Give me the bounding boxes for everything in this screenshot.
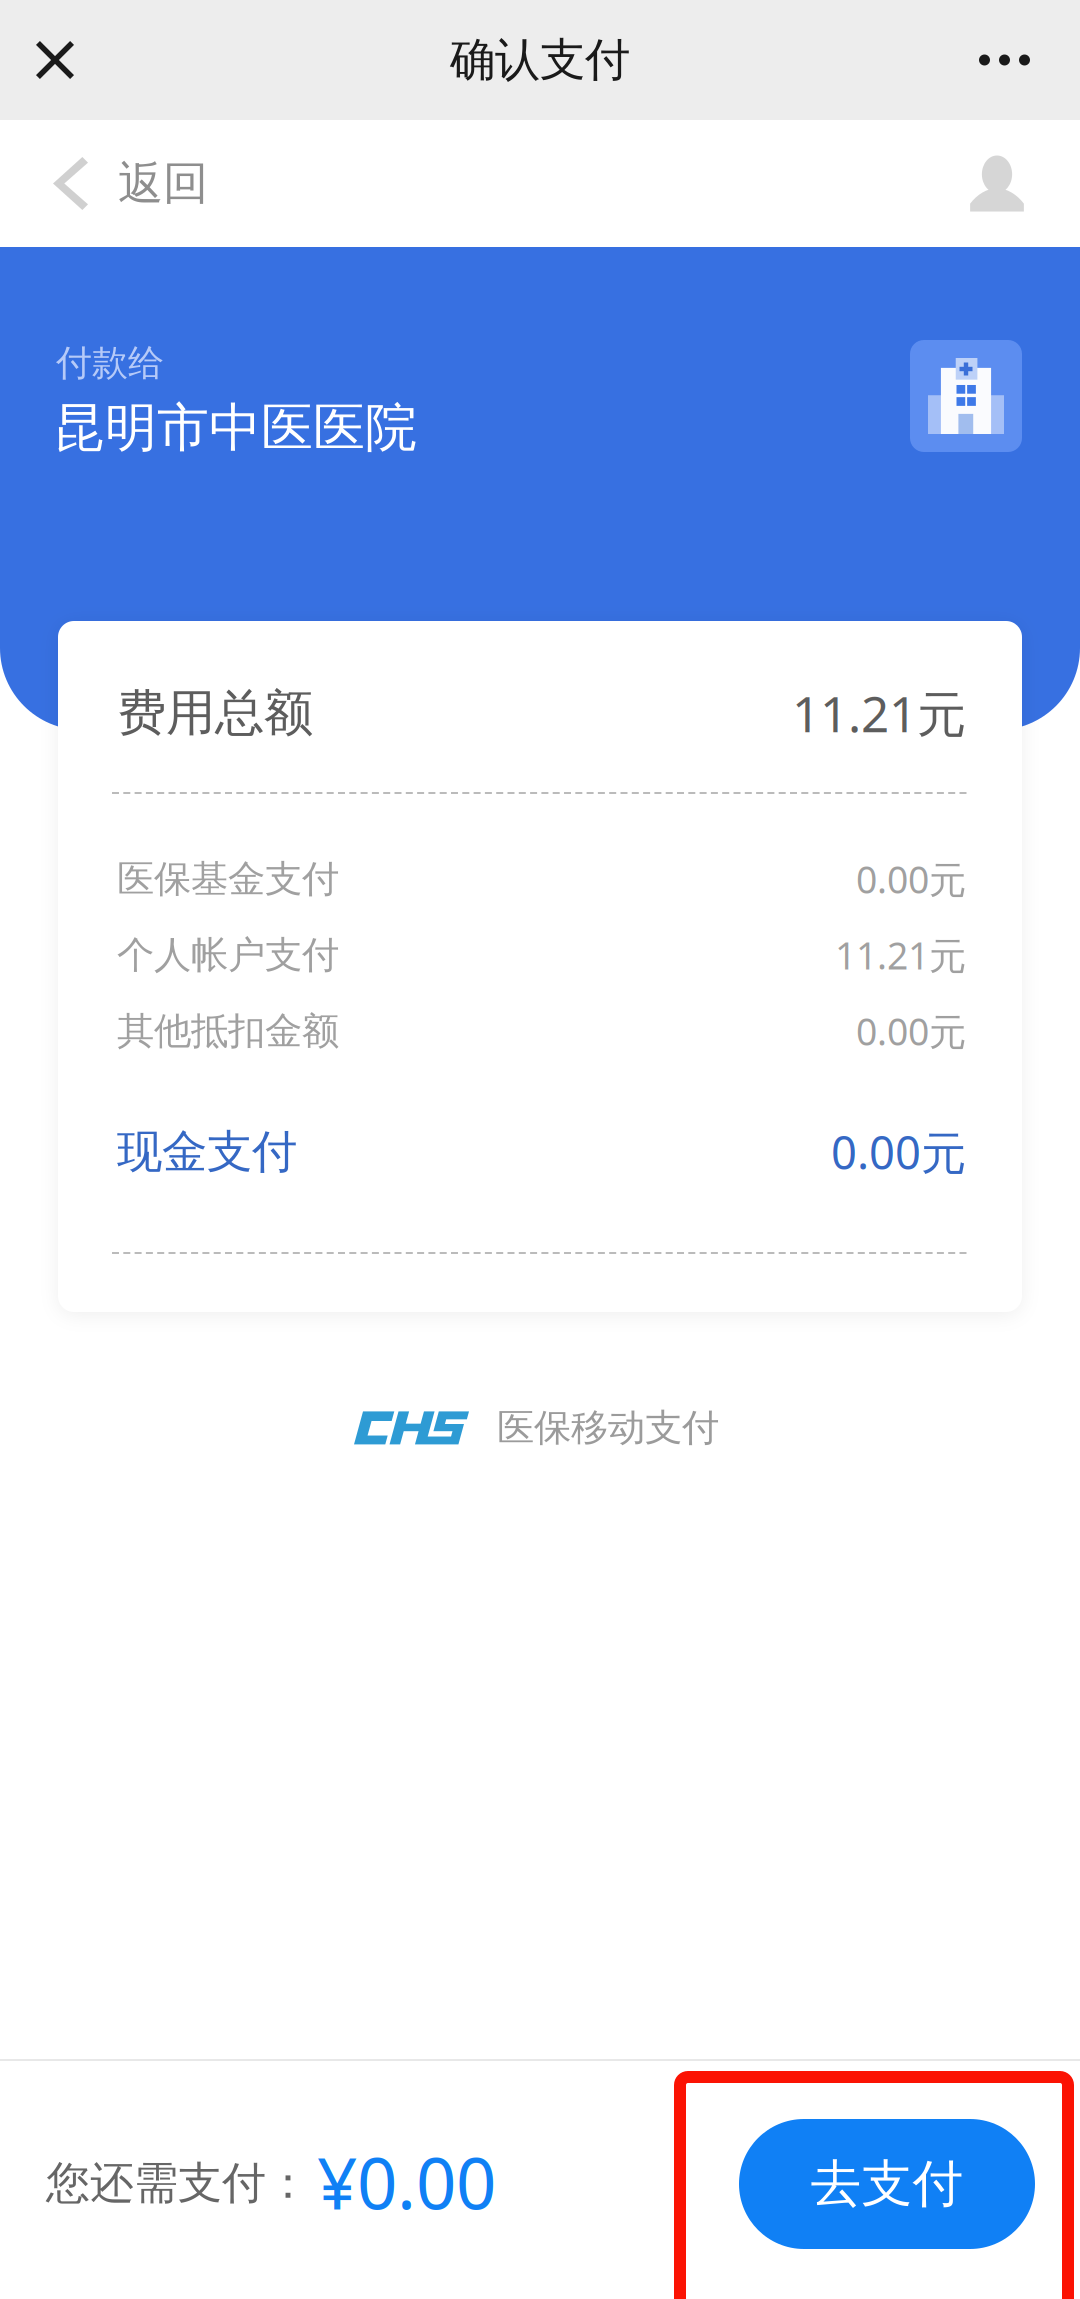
staticText: 0.00元 — [831, 1122, 966, 1182]
button[interactable]: 去支付 — [739, 2119, 1035, 2249]
staticText: 昆明市中医医院 — [53, 396, 417, 460]
staticText: 医保移动支付 — [497, 1405, 719, 1451]
staticText: 去支付 — [810, 2153, 963, 2215]
staticText: 医保基金支付 — [117, 856, 339, 902]
staticText: 个人帐户支付 — [117, 932, 339, 978]
button[interactable]: 关闭 — [0, 0, 118, 120]
staticText: ¥0.00 — [317, 2135, 496, 2229]
button[interactable]: 用户 — [939, 120, 1080, 247]
staticText: 11.21元 — [792, 680, 966, 746]
button[interactable]: 返回 — [0, 120, 238, 247]
staticText: 0.00元 — [856, 1006, 966, 1056]
staticText: 0.00元 — [856, 854, 966, 904]
staticText: 现金支付 — [117, 1124, 297, 1180]
staticText: 您还需支付： — [46, 2156, 310, 2210]
staticText: 付款给 — [56, 341, 164, 385]
staticText: 确认支付 — [450, 32, 630, 88]
staticText: 11.21元 — [835, 930, 966, 980]
staticText: 其他抵扣金额 — [117, 1008, 339, 1054]
button[interactable]: 更多 — [939, 0, 1080, 120]
staticText: 返回 — [118, 156, 208, 211]
staticText: 费用总额 — [117, 683, 313, 743]
